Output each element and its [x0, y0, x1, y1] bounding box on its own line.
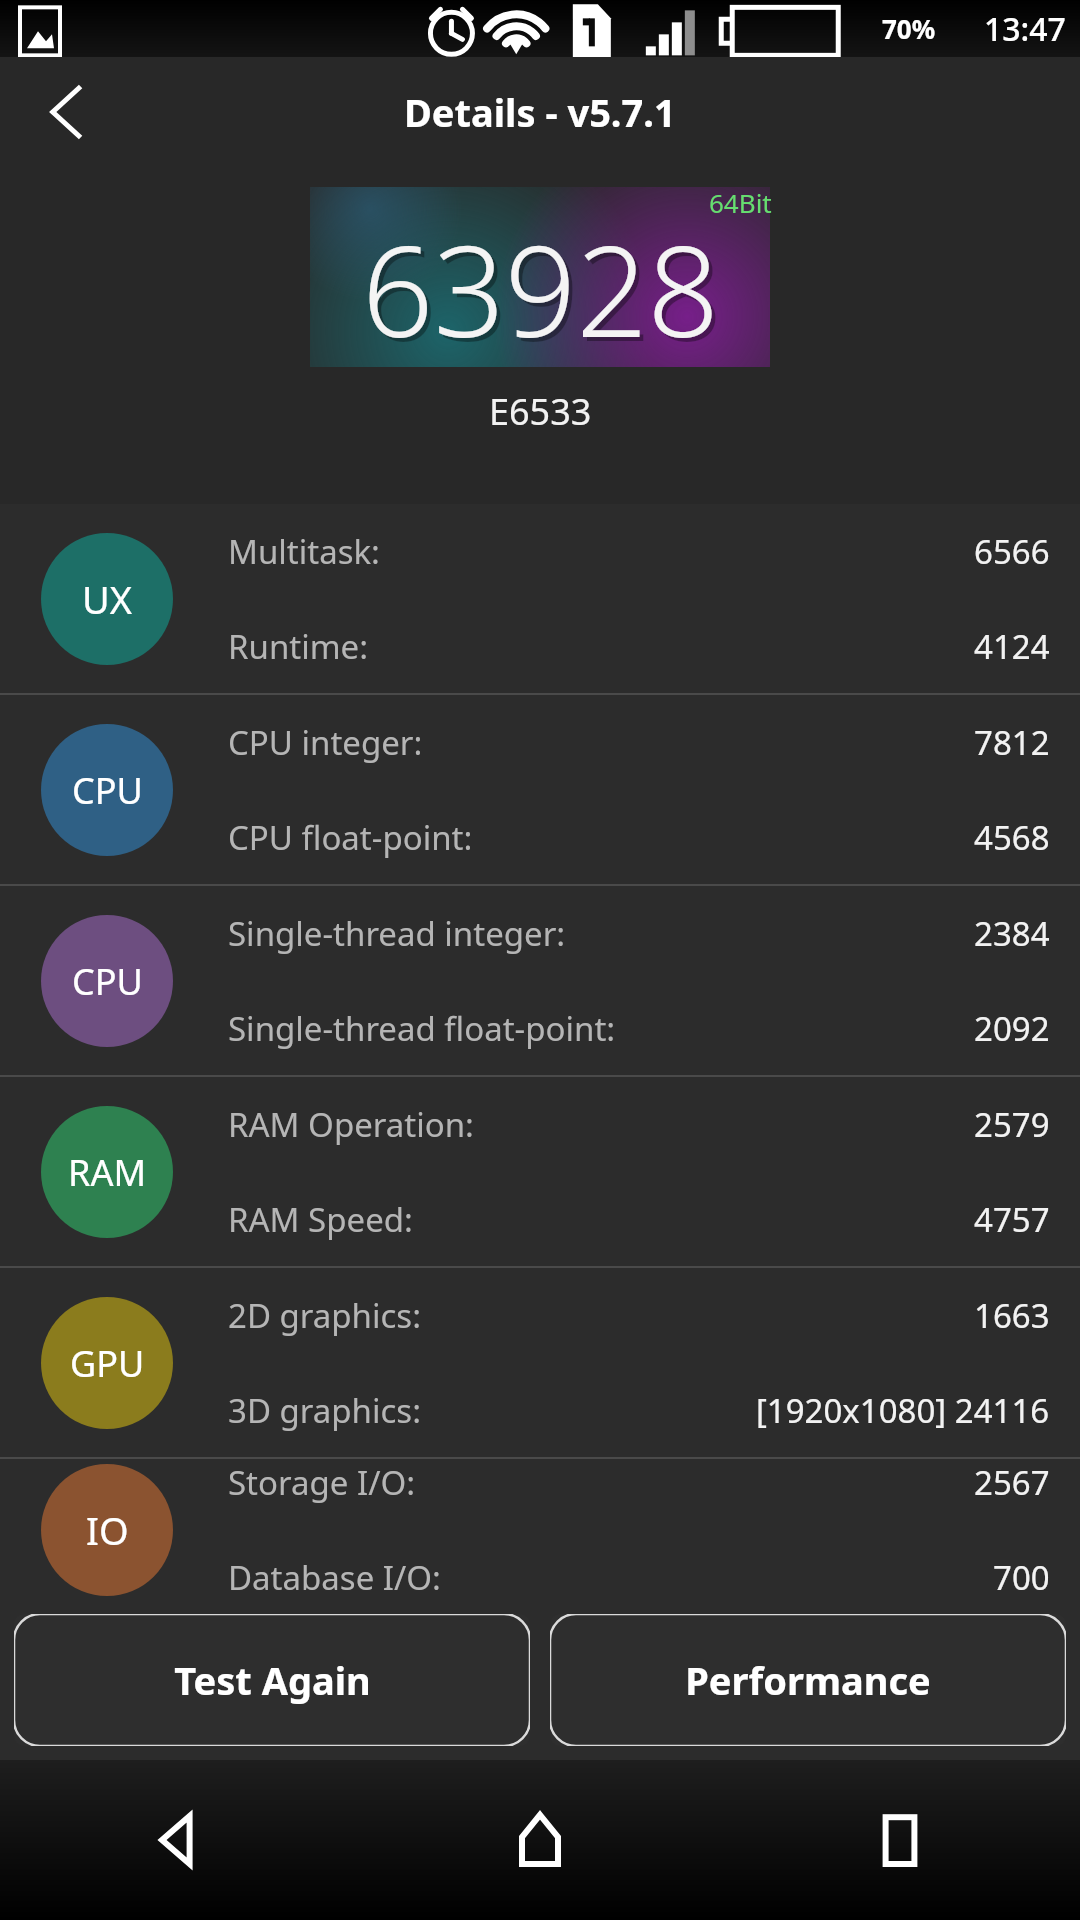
staticText: 2092	[974, 1006, 1050, 1051]
button[interactable]: IO	[0, 1459, 1080, 1600]
staticText: 63928	[362, 203, 719, 373]
button[interactable]: CPU	[0, 886, 1080, 1077]
button[interactable]: RAM	[0, 1077, 1080, 1268]
staticText: 70%	[882, 11, 936, 46]
button[interactable]: Recents	[720, 1760, 1080, 1920]
staticText: Single-thread float-point:	[228, 1006, 616, 1051]
button[interactable]: Home	[360, 1760, 720, 1920]
staticText: CPU integer:	[228, 720, 423, 765]
staticText: CPU	[72, 957, 143, 1006]
staticText: 4124	[974, 624, 1050, 669]
staticText: 2D graphics:	[228, 1293, 422, 1338]
button[interactable]: Performance	[550, 1614, 1066, 1746]
staticText: CPU	[72, 766, 143, 815]
staticText: Single-thread integer:	[228, 911, 566, 956]
staticText: E6533	[489, 387, 592, 436]
staticText: Runtime:	[228, 624, 369, 669]
staticText: IO	[86, 1504, 129, 1556]
staticText: RAM Operation:	[228, 1102, 474, 1147]
staticText: Multitask:	[228, 529, 380, 574]
staticText: GPU	[70, 1339, 145, 1388]
staticText: 1663	[974, 1293, 1050, 1338]
staticText: 7812	[974, 720, 1050, 765]
button[interactable]: UX	[0, 504, 1080, 695]
staticText: 64Bit	[709, 185, 772, 220]
staticText: RAM Speed:	[228, 1197, 413, 1242]
staticText: 4757	[974, 1197, 1050, 1242]
button[interactable]: Back	[28, 71, 110, 153]
staticText: 4568	[974, 815, 1050, 860]
staticText: 3D graphics:	[228, 1388, 422, 1433]
staticText: Storage I/O:	[228, 1460, 416, 1505]
staticText: 2567	[974, 1460, 1050, 1505]
staticText: CPU float-point:	[228, 815, 473, 860]
staticText: Database I/O:	[228, 1555, 441, 1600]
staticText: 700	[993, 1555, 1050, 1600]
staticText: 6566	[974, 529, 1050, 574]
button[interactable]: Test Again	[14, 1614, 530, 1746]
staticText: Details - v5.7.1	[404, 86, 676, 138]
button[interactable]: CPU	[0, 695, 1080, 886]
staticText: RAM	[68, 1148, 147, 1197]
staticText: 13:47	[984, 7, 1066, 51]
staticText: [1920x1080] 24116	[756, 1388, 1050, 1433]
staticText: UX	[82, 573, 133, 625]
button[interactable]: GPU	[0, 1268, 1080, 1459]
staticText: 2579	[974, 1102, 1050, 1147]
staticText: Test Again	[174, 1654, 371, 1706]
button[interactable]: Back	[0, 1760, 360, 1920]
staticText: 63928	[366, 207, 723, 377]
staticText: Performance	[685, 1654, 931, 1706]
staticText: 2384	[974, 911, 1050, 956]
